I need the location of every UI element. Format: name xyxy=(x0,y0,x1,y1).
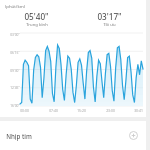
staticText: Nhịp tim xyxy=(6,132,32,140)
staticText: (phút/km) xyxy=(5,3,25,9)
button[interactable]: Thông tin xyxy=(127,129,140,142)
staticText: 07:40 xyxy=(49,108,58,113)
staticText: 06'15" xyxy=(10,50,20,54)
staticText: 12'45" xyxy=(10,85,20,89)
staticText: 05'40" xyxy=(24,11,49,22)
staticText: 09'30" xyxy=(10,68,20,72)
staticText: 23:00 xyxy=(106,108,115,113)
button[interactable]: 05'40" xyxy=(0,11,73,28)
staticText: 03'00" xyxy=(10,32,20,36)
staticText: 03'17" xyxy=(97,11,122,22)
button[interactable]: (phút/km) xyxy=(0,0,146,117)
staticText: 30:41 xyxy=(134,108,143,113)
button[interactable]: 03'17" xyxy=(73,11,146,28)
staticText: 16'00" xyxy=(10,103,20,107)
staticText: 00:00 xyxy=(20,108,29,113)
staticText: 15:20 xyxy=(77,108,86,113)
button[interactable]: Nhịp tim xyxy=(0,121,146,150)
staticText: Trung bình xyxy=(26,22,48,28)
staticText: Tối ưu xyxy=(103,22,116,28)
